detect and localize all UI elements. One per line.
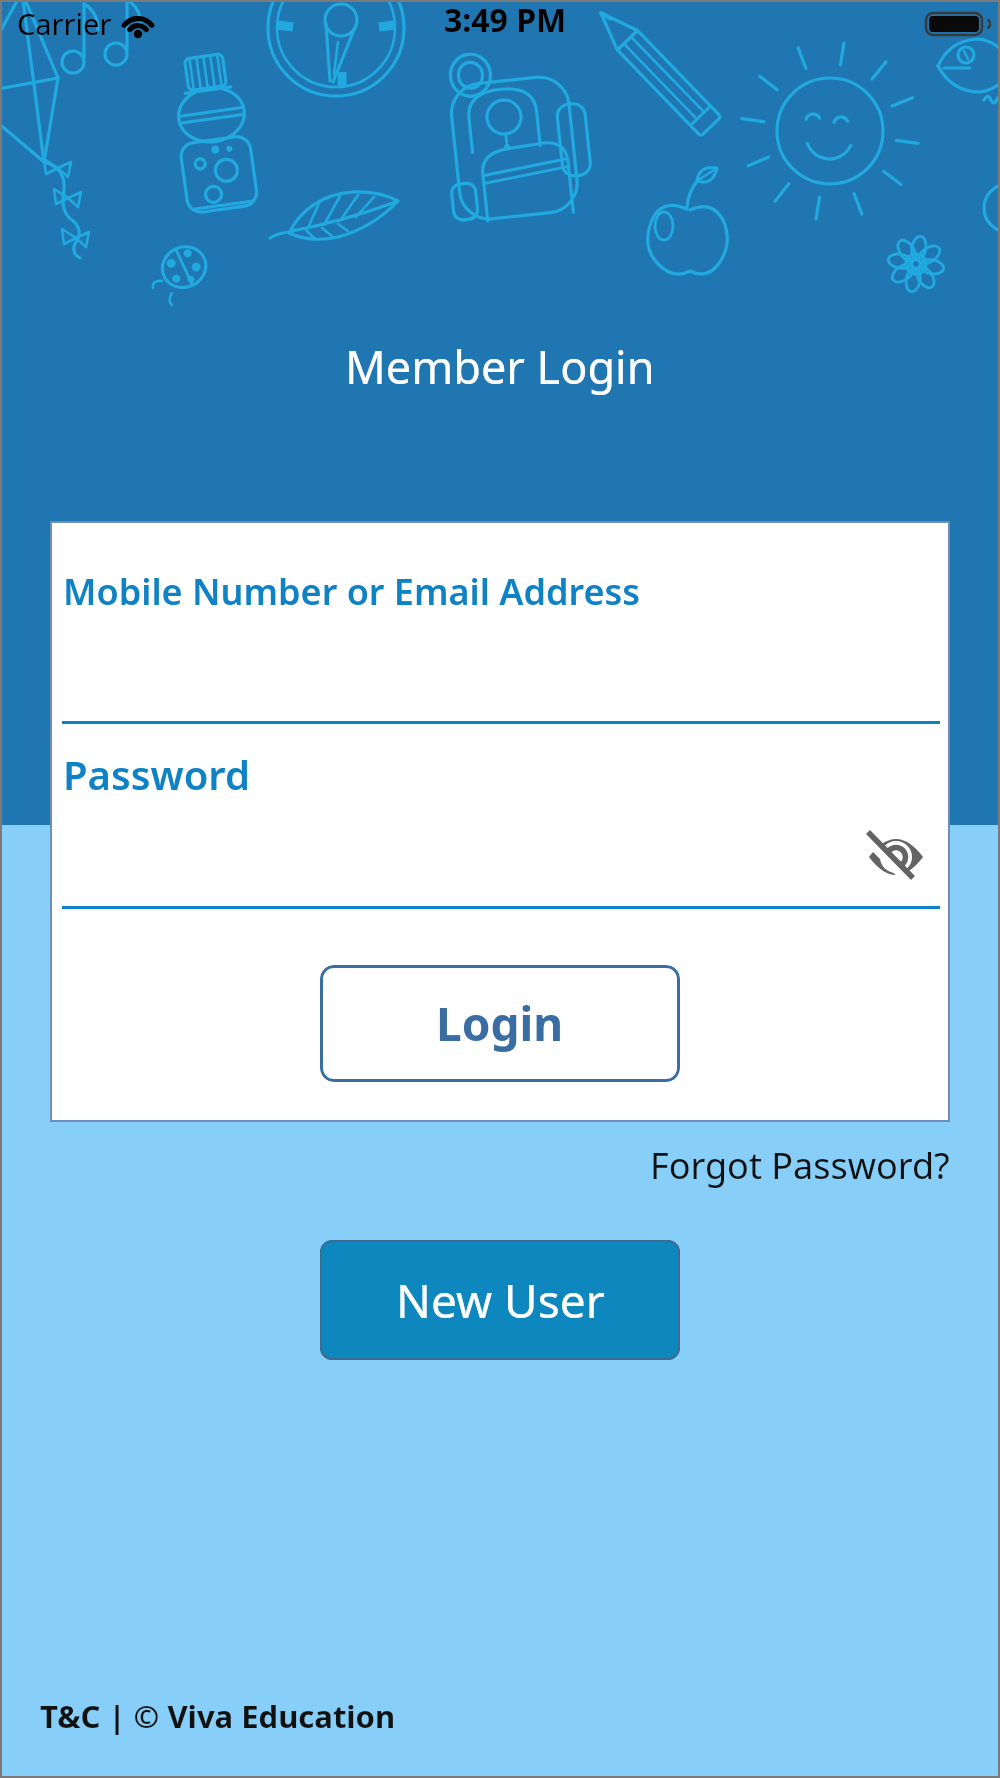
button[interactable]: Login: [320, 965, 680, 1082]
button[interactable]: Password: [50, 736, 950, 906]
button[interactable]: New User: [320, 1240, 680, 1360]
button[interactable]: [846, 821, 926, 891]
staticText: Carrier: [17, 4, 112, 43]
staticText: Login: [436, 992, 564, 1055]
staticText: T&C | © Viva Education: [40, 1695, 396, 1737]
button[interactable]: Mobile Number or Email Address: [50, 551, 950, 726]
staticText: 3:49 PM: [444, 0, 567, 42]
staticText: Mobile Number or Email Address: [63, 567, 641, 616]
staticText: Forgot Password?: [650, 1141, 950, 1190]
button[interactable]: T&C | © Viva Education: [40, 1695, 396, 1737]
staticText: New User: [396, 1269, 605, 1332]
button[interactable]: Forgot Password?: [480, 1136, 950, 1194]
staticText: Password: [63, 747, 250, 801]
staticText: Member Login: [345, 336, 655, 397]
